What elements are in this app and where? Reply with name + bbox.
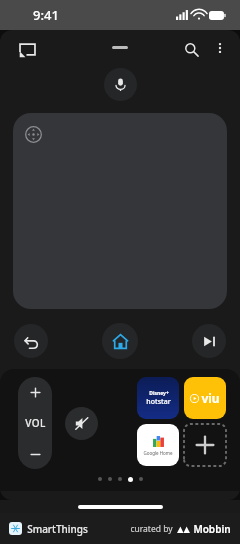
staticText: VOL bbox=[25, 416, 46, 430]
button[interactable]: Viu bbox=[184, 377, 226, 419]
staticText: hotstar bbox=[146, 397, 171, 407]
button[interactable]: Add app bbox=[184, 424, 226, 466]
button[interactable]: Google Home bbox=[137, 424, 179, 466]
staticText: Google Home bbox=[143, 450, 173, 456]
button[interactable]: Disney+ Hotstar bbox=[137, 377, 179, 419]
button[interactable]: Back bbox=[14, 324, 48, 358]
button[interactable] bbox=[13, 113, 227, 309]
button[interactable]: Cast bbox=[12, 34, 42, 64]
staticText: viu bbox=[201, 390, 220, 406]
staticText: SmartThings bbox=[27, 522, 88, 536]
button[interactable]: Search bbox=[176, 34, 206, 64]
staticText: Disney+ bbox=[149, 390, 169, 397]
button[interactable]: Play pause bbox=[192, 324, 226, 358]
staticText: Mobbin bbox=[193, 522, 231, 536]
button[interactable]: Volume up bbox=[18, 377, 52, 407]
button[interactable]: Mute bbox=[65, 407, 98, 440]
button[interactable]: Home bbox=[102, 323, 138, 359]
button[interactable]: More options bbox=[206, 34, 234, 62]
button[interactable]: Volume down bbox=[18, 439, 52, 469]
staticText: curated by bbox=[130, 523, 173, 535]
staticText: 9:41 bbox=[33, 6, 59, 24]
button[interactable]: Voice search bbox=[104, 68, 137, 101]
